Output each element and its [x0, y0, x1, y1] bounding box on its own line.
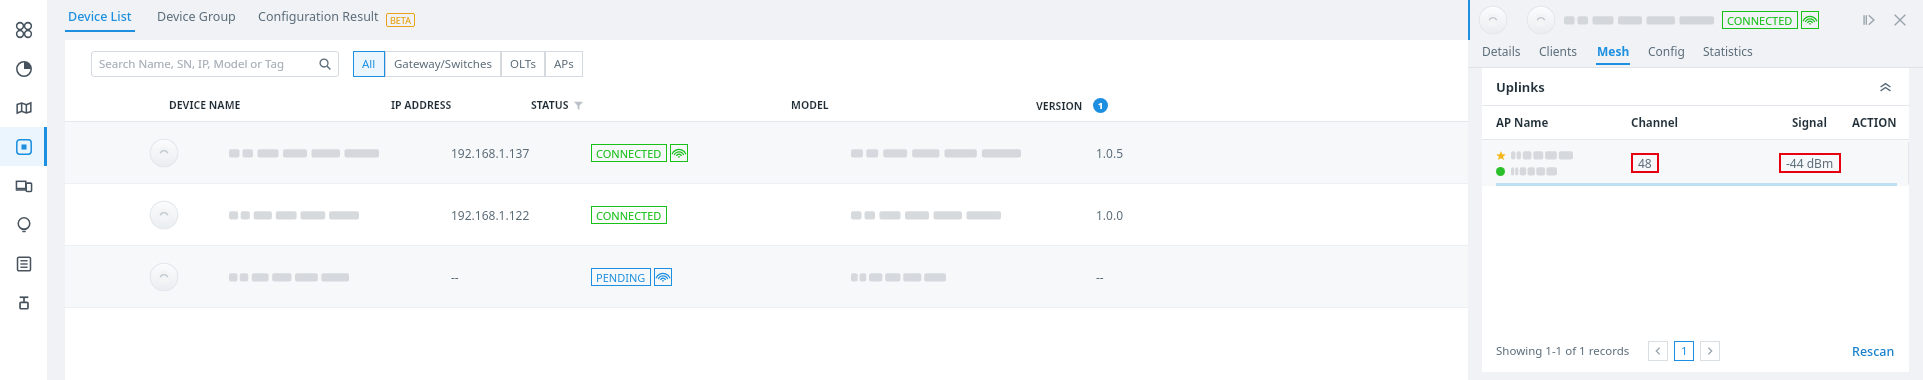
- button[interactable]: Collapse: [1875, 77, 1895, 97]
- staticText: 192.168.1.122: [451, 207, 530, 223]
- button[interactable]: Rescan: [1852, 343, 1895, 360]
- staticText: Clients: [1539, 43, 1578, 59]
- button[interactable]: Clients: [0, 166, 47, 205]
- button[interactable]: Details: [1482, 40, 1521, 68]
- staticText: Mesh: [1597, 43, 1630, 59]
- staticText: Search Name, SN, IP, Model or Tag: [99, 56, 285, 72]
- staticText: IP ADDRESS: [391, 98, 452, 112]
- staticText: Showing 1-1 of 1 records: [1496, 343, 1630, 359]
- staticText: Uplinks: [1496, 78, 1545, 96]
- staticText: 1.0.0: [1096, 207, 1124, 223]
- button[interactable]: Search Name, SN, IP, Model or Tag: [91, 51, 339, 77]
- button[interactable]: All: [353, 51, 385, 77]
- button[interactable]: Next page: [1700, 341, 1720, 361]
- staticText: Device Group: [157, 8, 236, 25]
- staticText: Gateway/Switches: [394, 56, 492, 72]
- staticText: Configuration Result: [258, 8, 379, 25]
- staticText: Channel: [1631, 115, 1678, 131]
- button[interactable]: PENDING: [591, 268, 651, 286]
- staticText: CONNECTED: [596, 146, 662, 161]
- staticText: OLTs: [510, 56, 536, 72]
- button[interactable]: CONNECTED: [591, 206, 667, 224]
- staticText: --: [451, 269, 459, 285]
- staticText: APs: [554, 56, 574, 72]
- staticText: Rescan: [1852, 343, 1895, 360]
- staticText: AP Name: [1496, 115, 1549, 131]
- staticText: CONNECTED: [1727, 13, 1793, 28]
- staticText: ACTION: [1852, 115, 1897, 131]
- button[interactable]: Logs: [0, 244, 47, 283]
- button[interactable]: Configuration Result: [258, 8, 379, 32]
- button[interactable]: Insights: [0, 205, 47, 244]
- staticText: --: [1096, 269, 1104, 285]
- button[interactable]: Wireless: [654, 268, 672, 286]
- button[interactable]: Mesh: [1596, 40, 1630, 68]
- staticText: Device List: [68, 8, 132, 25]
- button[interactable]: APs: [545, 51, 583, 77]
- staticText: 48: [1638, 155, 1652, 171]
- button[interactable]: Previous page: [1648, 341, 1668, 361]
- staticText: Statistics: [1703, 43, 1753, 59]
- button[interactable]: CONNECTED: [591, 144, 667, 162]
- staticText: STATUS: [531, 98, 569, 112]
- staticText: MODEL: [791, 98, 829, 112]
- staticText: BETA: [390, 14, 411, 26]
- button[interactable]: Statistics: [1703, 40, 1753, 68]
- staticText: 1.0.5: [1096, 145, 1124, 161]
- button[interactable]: 192.168.1.122: [65, 184, 1923, 246]
- button[interactable]: CONNECTED: [1722, 11, 1798, 29]
- staticText: 192.168.1.137: [451, 145, 530, 161]
- button[interactable]: Wireless: [670, 144, 688, 162]
- staticText: Details: [1482, 43, 1521, 59]
- button[interactable]: 48: [1482, 140, 1909, 186]
- button[interactable]: Wireless: [1801, 11, 1819, 29]
- button[interactable]: Map: [0, 88, 47, 127]
- staticText: 1: [1681, 343, 1688, 359]
- button[interactable]: OLTs: [501, 51, 545, 77]
- staticText: DEVICE NAME: [169, 98, 241, 112]
- staticText: All: [362, 56, 376, 72]
- button[interactable]: Dashboard: [0, 10, 47, 49]
- staticText: Signal: [1792, 115, 1827, 131]
- staticText: CONNECTED: [596, 208, 662, 223]
- button[interactable]: Device List: [65, 8, 135, 32]
- staticText: -44 dBm: [1786, 155, 1834, 171]
- staticText: 1: [1098, 99, 1104, 112]
- button[interactable]: 192.168.1.137: [65, 122, 1923, 184]
- button[interactable]: --: [65, 246, 1923, 308]
- button[interactable]: Close: [1889, 9, 1911, 31]
- button[interactable]: Clients: [1539, 40, 1578, 68]
- button[interactable]: Expand panel: [1857, 9, 1879, 31]
- button[interactable]: Gateway/Switches: [385, 51, 501, 77]
- button[interactable]: Devices: [0, 127, 47, 166]
- staticText: Config: [1648, 43, 1685, 59]
- button[interactable]: Config: [1648, 40, 1685, 68]
- button[interactable]: Device Group: [157, 8, 236, 32]
- button[interactable]: BETA: [390, 14, 411, 26]
- button[interactable]: 1: [1674, 341, 1694, 361]
- staticText: PENDING: [596, 270, 646, 285]
- button[interactable]: Tools: [0, 283, 47, 322]
- staticText: VERSION: [1036, 99, 1083, 113]
- button[interactable]: Analytics: [0, 49, 47, 88]
